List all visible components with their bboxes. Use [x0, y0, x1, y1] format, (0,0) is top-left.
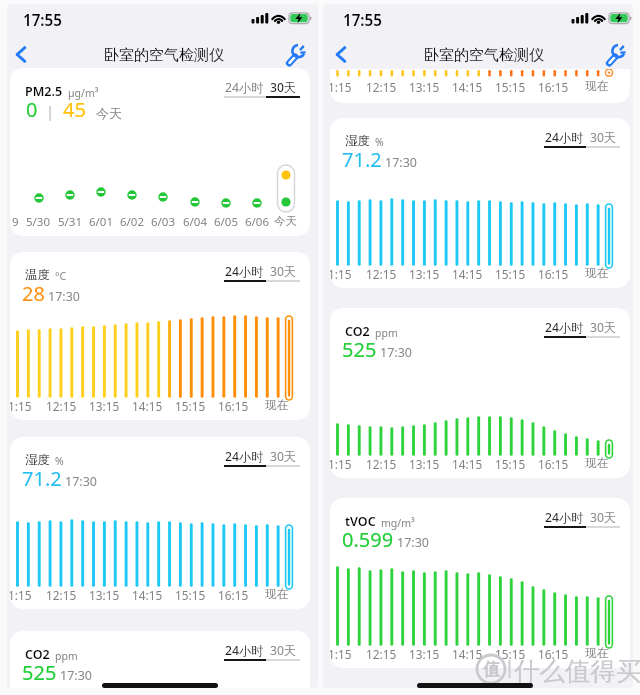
button[interactable]: 24小时: [223, 448, 301, 470]
button[interactable]: 1:15: [330, 69, 630, 103]
button[interactable]: PM2.5: [10, 68, 310, 236]
staticText: 6/05: [214, 214, 239, 230]
staticText: 15:15: [495, 266, 526, 282]
staticText: 14:15: [452, 456, 483, 472]
button[interactable]: 温度: [10, 252, 310, 420]
staticText: 24小时: [225, 642, 264, 659]
staticText: 6/01: [89, 214, 114, 230]
button[interactable]: 24小时: [543, 129, 621, 151]
staticText: 5/30: [26, 214, 51, 230]
staticText: mg/m³: [381, 516, 415, 530]
staticText: 值: [483, 659, 500, 680]
staticText: %: [55, 454, 64, 468]
staticText: 17:30: [397, 534, 429, 551]
button[interactable]: 24小时: [223, 79, 301, 101]
staticText: 13:15: [409, 456, 440, 472]
staticText: 0.599: [342, 526, 394, 553]
staticText: 卧室的空气检测仪: [424, 46, 544, 65]
staticText: 13:15: [409, 79, 440, 95]
staticText: 14:15: [452, 79, 483, 95]
button[interactable]: 湿度: [330, 118, 630, 288]
staticText: 24小时: [545, 129, 584, 146]
staticText: 今天: [274, 214, 297, 228]
staticText: 30天: [270, 79, 297, 96]
staticText: 24小时: [545, 319, 584, 336]
button[interactable]: [328, 40, 358, 70]
staticText: 现在: [585, 79, 609, 94]
staticText: 28: [22, 280, 45, 307]
staticText: 1:15: [330, 266, 352, 282]
staticText: CO2: [25, 646, 50, 663]
staticText: 12:15: [366, 646, 397, 662]
button[interactable]: CO2: [330, 308, 630, 478]
staticText: 24小时: [225, 263, 264, 280]
button[interactable]: [8, 40, 38, 70]
staticText: ppm: [55, 649, 78, 663]
button[interactable]: [283, 42, 311, 70]
button[interactable]: 24小时: [543, 509, 621, 531]
staticText: 13:15: [409, 646, 440, 662]
staticText: 16:15: [538, 79, 569, 95]
staticText: 17:30: [60, 667, 92, 684]
staticText: 6/06: [245, 214, 270, 230]
staticText: 17:30: [380, 344, 412, 361]
staticText: 湿度: [345, 133, 370, 149]
staticText: 卧室的空气检测仪: [104, 46, 224, 65]
button[interactable]: [603, 42, 631, 70]
staticText: 6/02: [120, 214, 145, 230]
button[interactable]: 24小时: [223, 263, 301, 285]
staticText: 16:15: [218, 587, 249, 603]
staticText: CO2: [345, 323, 370, 340]
staticText: 45: [63, 96, 86, 123]
staticText: 6/04: [183, 214, 208, 230]
staticText: 12:15: [366, 456, 397, 472]
staticText: ppm: [375, 326, 398, 340]
staticText: 13:15: [89, 398, 120, 414]
staticText: 现在: [265, 398, 289, 413]
staticText: 12:15: [46, 587, 77, 603]
staticText: 湿度: [25, 452, 50, 468]
staticText: 16:15: [538, 266, 569, 282]
staticText: 14:15: [452, 646, 483, 662]
button[interactable]: tVOC: [330, 498, 630, 668]
staticText: µg/m³: [68, 86, 99, 100]
button[interactable]: 24小时: [543, 319, 621, 341]
staticText: %: [375, 135, 384, 149]
staticText: 24小时: [545, 509, 584, 526]
staticText: 1:15: [330, 646, 352, 662]
button[interactable]: 湿度: [10, 437, 310, 609]
staticText: 17:55: [343, 10, 382, 31]
staticText: 13:15: [89, 587, 120, 603]
staticText: 30天: [270, 642, 297, 659]
button[interactable]: CO2: [10, 631, 310, 695]
staticText: 12:15: [366, 266, 397, 282]
staticText: 17:30: [48, 288, 80, 305]
button[interactable]: 24小时: [223, 642, 301, 664]
staticText: 24小时: [225, 448, 264, 465]
staticText: 24小时: [225, 79, 264, 96]
staticText: °C: [55, 269, 67, 283]
staticText: 14:15: [132, 398, 163, 414]
staticText: 5/31: [58, 214, 83, 230]
staticText: 12:15: [366, 79, 397, 95]
staticText: 现在: [585, 646, 609, 661]
staticText: 17:30: [65, 473, 97, 490]
staticText: 0: [26, 96, 38, 123]
staticText: 现在: [585, 456, 609, 471]
staticText: 525: [22, 659, 57, 686]
staticText: 什么值得买: [514, 655, 640, 687]
staticText: 1:15: [10, 398, 32, 414]
staticText: 30天: [270, 448, 297, 465]
staticText: 15:15: [495, 79, 526, 95]
staticText: 16:15: [538, 646, 569, 662]
staticText: 15:15: [495, 456, 526, 472]
staticText: tVOC: [345, 513, 376, 530]
staticText: 17:30: [385, 154, 417, 171]
staticText: 30天: [590, 319, 617, 336]
staticText: PM2.5: [25, 83, 63, 100]
staticText: 71.2: [22, 465, 62, 492]
staticText: 12:15: [46, 398, 77, 414]
staticText: 今天: [96, 105, 122, 121]
staticText: 16:15: [218, 398, 249, 414]
staticText: 1:15: [330, 79, 352, 95]
